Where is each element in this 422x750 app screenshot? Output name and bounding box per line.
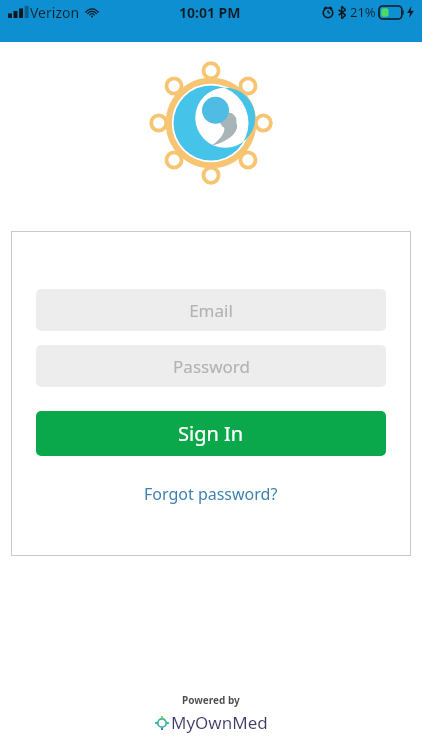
staticText: 10:01 PM (179, 3, 241, 22)
staticText: Forgot password? (144, 483, 278, 505)
button[interactable]: Forgot password? (134, 478, 288, 510)
staticText: Email (189, 299, 233, 322)
staticText: Verizon (30, 3, 80, 22)
staticText: MyOwnMed (171, 711, 268, 734)
button[interactable]: Sign In (36, 411, 386, 456)
other: MyOwnMed (155, 711, 268, 734)
staticText: Powered by (182, 693, 240, 707)
button[interactable]: Email (36, 289, 386, 331)
button[interactable]: Password (36, 345, 386, 387)
staticText: 21% (350, 3, 376, 21)
staticText: Password (173, 355, 250, 378)
staticText: Sign In (178, 420, 244, 447)
